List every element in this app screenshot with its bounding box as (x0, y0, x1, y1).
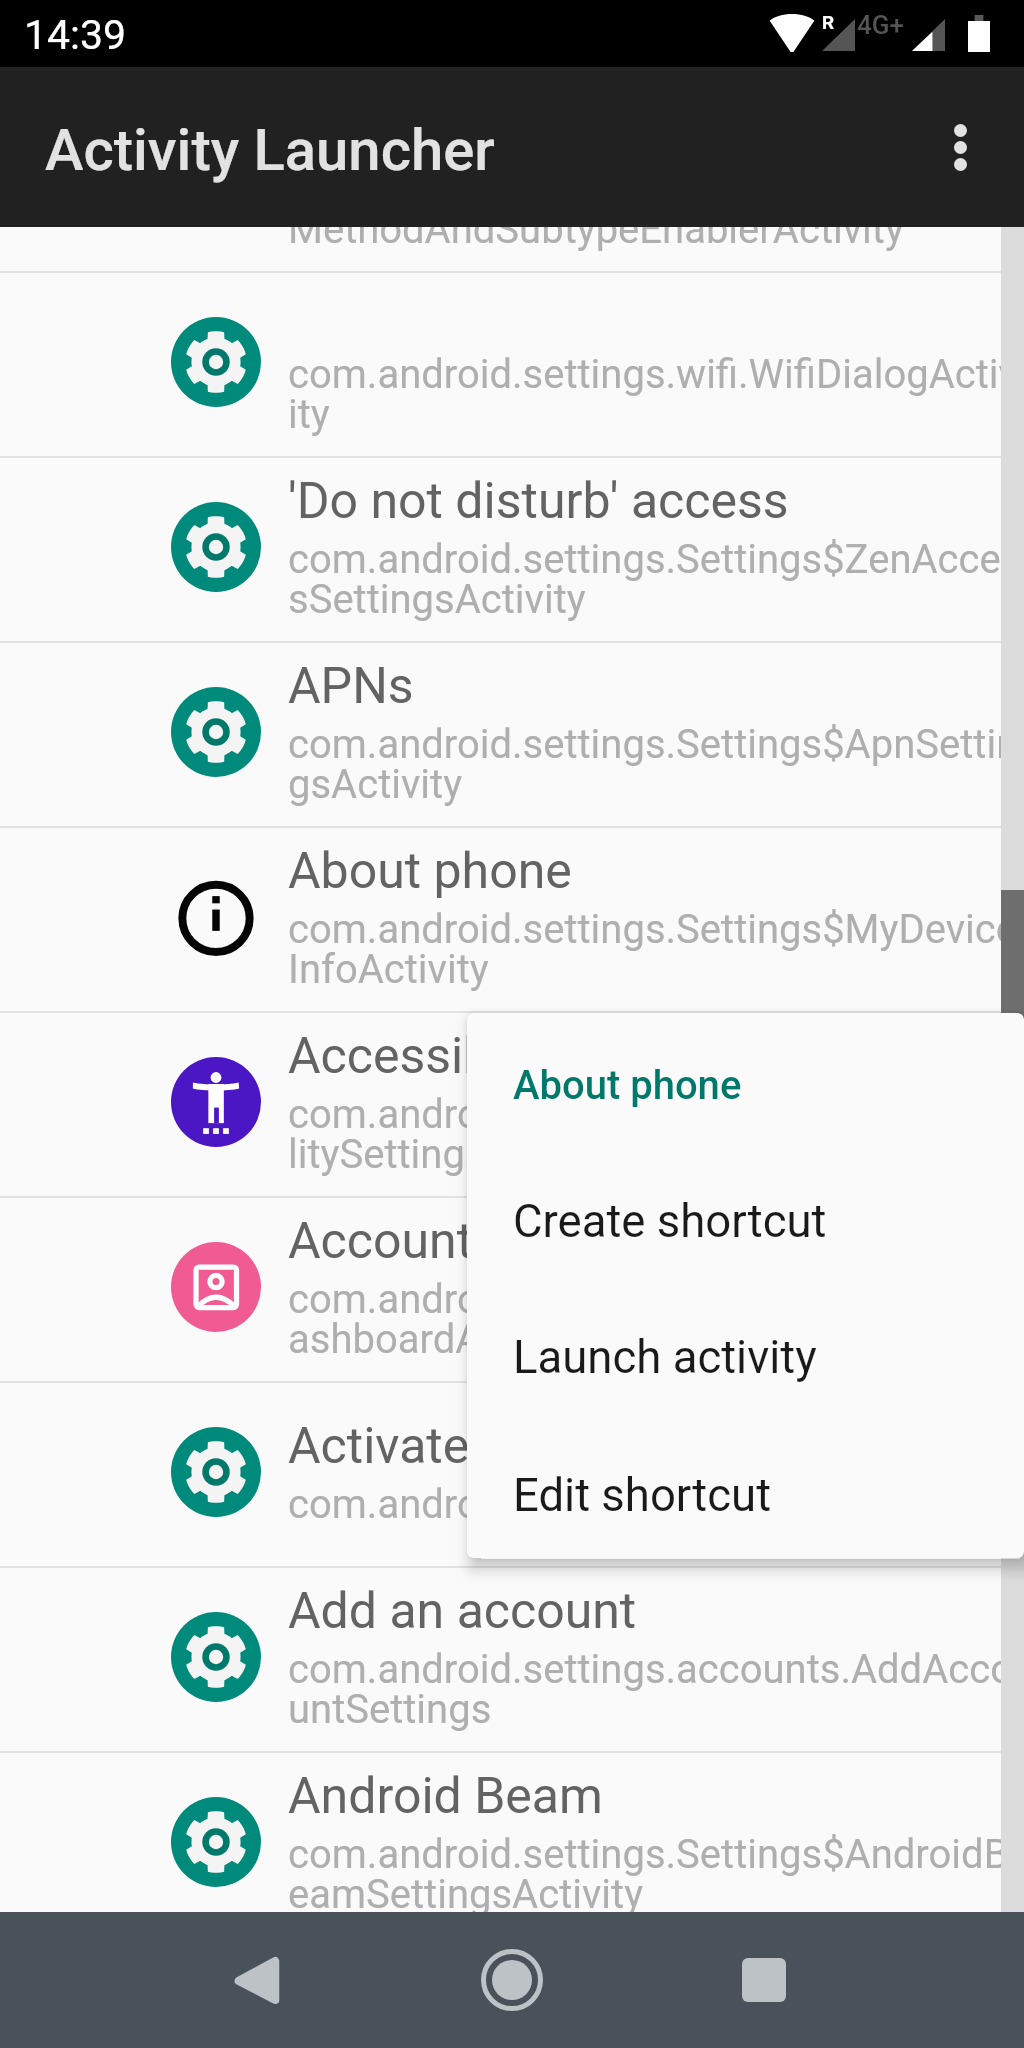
staticText: com.android.settings.Settings$Accessibil… (288, 1091, 1024, 1177)
button[interactable]: Launch activity (467, 1296, 1024, 1418)
button[interactable]: APNs (0, 643, 1024, 826)
button[interactable]: Accessibility (0, 1013, 1024, 1196)
button[interactable]: com.android.settings.wifi.WifiDialogActi… (0, 273, 1024, 456)
button[interactable]: 'Do not disturb' access (0, 458, 1024, 641)
button[interactable]: Android Beam (0, 1753, 1024, 1912)
staticText: 4G+ (857, 10, 904, 40)
staticText: Activity Launcher (45, 116, 495, 184)
button[interactable]: Accounts (0, 1198, 1024, 1381)
staticText: Launch activity (513, 1331, 817, 1384)
staticText: Android Beam (288, 1767, 603, 1826)
staticText: com.android.settings.wifi.WifiDialogActi… (288, 351, 1024, 437)
staticText: About phone (513, 1062, 742, 1109)
button[interactable]: com.android.settings.inputmethod.InputMe… (0, 227, 1024, 271)
staticText: com.android.settings.Settings$AndroidBea… (288, 1831, 1024, 1912)
staticText: About phone (288, 842, 572, 901)
staticText: APNs (288, 657, 414, 716)
button[interactable]: More options (912, 99, 1008, 195)
staticText: Accounts (288, 1212, 499, 1271)
staticText: com.android.settings.inputmethod.InputMe… (288, 227, 1024, 252)
staticText: Add an account (288, 1582, 637, 1641)
button[interactable]: Add an account (0, 1568, 1024, 1751)
staticText: 14:39 (24, 11, 127, 59)
button[interactable]: Edit shortcut (467, 1434, 1024, 1556)
button[interactable]: About phone (0, 828, 1024, 1011)
staticText: R (822, 11, 835, 33)
staticText: com.android.settings.Settings$MyDeviceIn… (288, 906, 1024, 992)
staticText: Create shortcut (513, 1195, 827, 1248)
staticText: 'Do not disturb' access (288, 472, 789, 531)
staticText: com.android.settings.accounts.AddAccount… (288, 1646, 1024, 1732)
staticText: com.android.settings.Settings$ApnSetting… (288, 721, 1024, 807)
staticText: com.android.settings.SetProfileOwner (288, 1481, 963, 1528)
button[interactable]: Back (199, 1924, 311, 2036)
button[interactable]: Create shortcut (467, 1160, 1024, 1282)
button[interactable]: Activate (0, 1383, 1024, 1566)
staticText: com.android.settings.Settings$ZenAccessS… (288, 536, 1024, 622)
staticText: Activate (288, 1417, 470, 1476)
staticText: Edit shortcut (513, 1469, 772, 1522)
button[interactable]: Home (456, 1924, 568, 2036)
button[interactable]: Recents (708, 1924, 820, 2036)
staticText: com.android.settings.Settings$AccountDas… (288, 1276, 1024, 1362)
staticText: Accessibility (288, 1027, 568, 1086)
